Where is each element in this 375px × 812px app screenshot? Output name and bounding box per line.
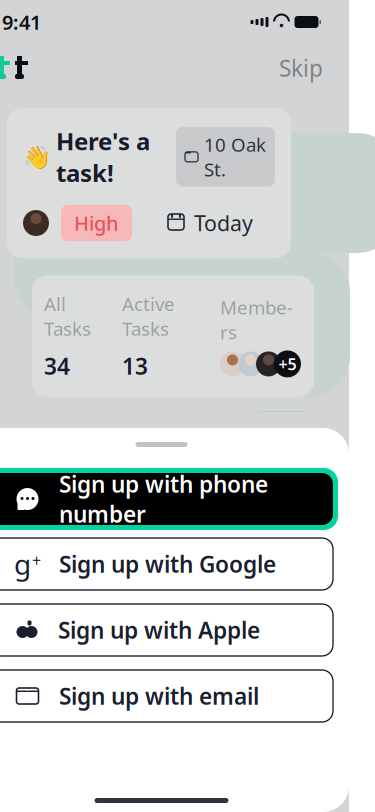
staticText: g (14, 545, 31, 583)
staticText: Sign up with Apple (58, 615, 260, 645)
staticText: Active Tasks (122, 291, 175, 341)
staticText: 9:41 (2, 9, 41, 35)
staticText: 10 Oak St. (204, 132, 266, 182)
staticText: + (32, 550, 41, 571)
button[interactable]: g (0, 538, 349, 590)
staticText: 👋 (23, 144, 51, 170)
staticText: All Tasks (44, 291, 91, 341)
button[interactable]: Sign up with email (0, 670, 349, 722)
staticText: +5 (278, 353, 296, 374)
button[interactable]: Sign up with Apple (0, 604, 349, 656)
button[interactable]: Sign up with phone number (0, 468, 349, 530)
staticText: 34 (44, 351, 70, 381)
staticText: Sign up with email (59, 681, 259, 711)
staticText: Today (194, 209, 253, 237)
staticText: 13 (122, 351, 148, 381)
staticText: Sign up with Google (59, 549, 276, 579)
staticText: Members (220, 295, 293, 344)
button[interactable]: Skip (273, 47, 329, 89)
staticText: Here's a task! (56, 125, 150, 189)
staticText: High (74, 210, 119, 236)
staticText: Sign up with phone number (59, 469, 268, 529)
staticText: Skip (279, 53, 323, 83)
